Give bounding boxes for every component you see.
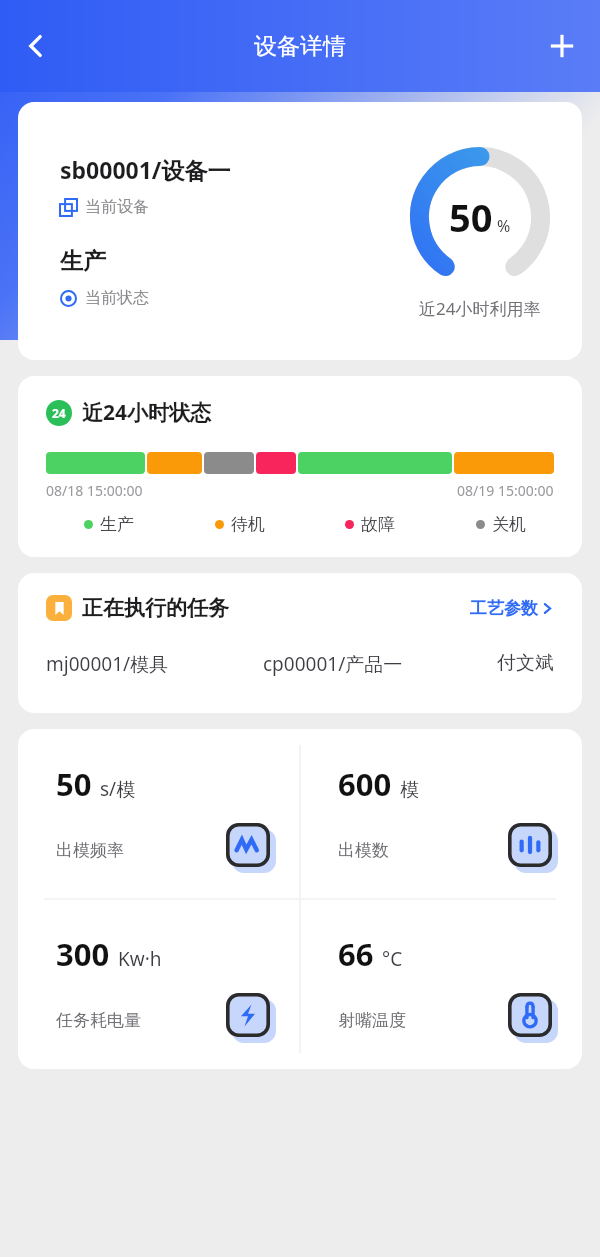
staticText: 近24小时状态: [82, 398, 212, 427]
staticText: 08/18 15:00:00: [46, 481, 143, 500]
staticText: 66: [338, 933, 374, 975]
staticText: 08/19 15:00:00: [457, 481, 554, 500]
staticText: 任务耗电量: [56, 1010, 141, 1031]
staticText: 关机: [492, 514, 526, 535]
button[interactable]: 300: [18, 899, 300, 1069]
staticText: 付文斌: [497, 651, 554, 675]
staticText: 工艺参数: [470, 598, 538, 619]
staticText: 射嘴温度: [338, 1010, 406, 1031]
staticText: 300: [56, 933, 110, 975]
staticText: 模: [400, 778, 419, 802]
staticText: 故障: [361, 514, 395, 535]
staticText: 正在执行的任务: [82, 595, 229, 621]
staticText: 出模频率: [56, 840, 124, 861]
staticText: %: [497, 215, 511, 237]
button[interactable]: 50: [18, 729, 300, 899]
staticText: 50: [449, 191, 493, 243]
button[interactable]: 工艺参数: [470, 598, 554, 619]
staticText: s/模: [100, 776, 136, 802]
staticText: 24: [52, 405, 66, 421]
staticText: 600: [338, 763, 392, 805]
button[interactable]: Add: [534, 18, 590, 74]
button[interactable]: Back: [8, 18, 64, 74]
staticText: Kw·h: [118, 946, 162, 972]
staticText: °C: [382, 946, 403, 972]
staticText: sb00001/设备一: [60, 154, 231, 185]
staticText: 生产: [100, 514, 134, 535]
staticText: 近24小时利用率: [419, 297, 541, 320]
staticText: 设备详情: [254, 32, 346, 61]
button[interactable]: 66: [300, 899, 582, 1069]
staticText: 当前状态: [85, 288, 149, 308]
staticText: 待机: [231, 514, 265, 535]
staticText: cp00001/产品一: [263, 651, 403, 677]
staticText: 当前设备: [85, 197, 149, 217]
staticText: 出模数: [338, 840, 389, 861]
staticText: 50: [56, 763, 92, 805]
staticText: mj00001/模具: [46, 651, 169, 677]
button[interactable]: 600: [300, 729, 582, 899]
staticText: 生产: [60, 247, 106, 276]
